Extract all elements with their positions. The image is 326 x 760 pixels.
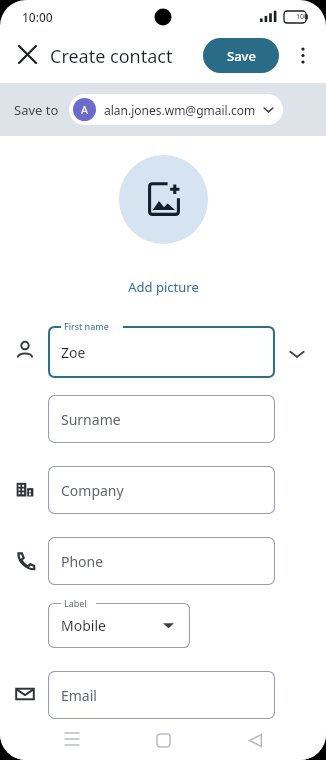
button[interactable]: Recents: [52, 720, 92, 760]
button[interactable]: Back: [235, 720, 275, 760]
staticText: Add picture: [128, 278, 199, 296]
staticText: A: [81, 102, 89, 117]
staticText: 10:00: [22, 9, 53, 25]
staticText: Phone: [61, 552, 104, 571]
button[interactable]: Phone: [48, 537, 275, 585]
button[interactable]: Label: [48, 603, 190, 648]
staticText: Save: [227, 47, 256, 65]
button[interactable]: Close: [10, 37, 44, 71]
button[interactable]: Email: [48, 671, 275, 719]
button[interactable]: Company: [48, 466, 275, 514]
staticText: Company: [61, 481, 124, 500]
staticText: Zoe: [61, 343, 86, 362]
staticText: alan.jones.wm@gmail.com: [104, 102, 256, 118]
staticText: First name: [64, 320, 109, 332]
button[interactable]: Save: [203, 38, 279, 73]
button[interactable]: Add picture: [119, 155, 208, 244]
button[interactable]: Home: [143, 720, 183, 760]
staticText: 100: [296, 12, 309, 22]
button[interactable]: More options: [286, 37, 320, 71]
staticText: Label: [64, 597, 87, 609]
button[interactable]: Expand name fields: [283, 340, 311, 368]
staticText: Save to: [14, 101, 59, 119]
button[interactable]: Surname: [48, 395, 275, 443]
button[interactable]: A: [69, 94, 283, 125]
staticText: Create contact: [50, 44, 173, 69]
button[interactable]: First name: [48, 326, 275, 378]
staticText: Mobile: [61, 616, 106, 635]
staticText: Email: [61, 686, 97, 705]
staticText: Surname: [61, 410, 121, 429]
